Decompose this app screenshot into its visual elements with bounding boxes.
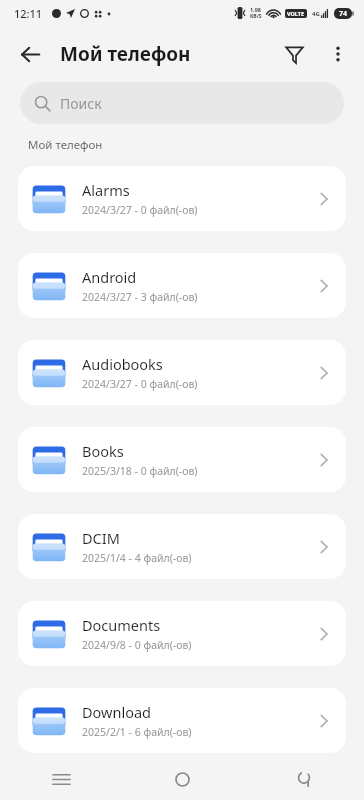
button[interactable]: Audiobooks [18,340,346,405]
staticText: Поиск [60,94,102,113]
staticText: 2024/3/27 - 3 файл(-ов) [82,290,198,304]
staticText: 2025/1/4 - 4 файл(-ов) [82,551,192,565]
staticText: 2024/9/8 - 0 файл(-ов) [82,638,192,652]
button[interactable]: Home [122,758,243,800]
staticText: Documents [82,615,161,635]
button[interactable]: Поиск [20,82,344,124]
staticText: 2025/3/18 - 0 файл(-ов) [82,464,198,478]
staticText: DCIM [82,528,120,548]
staticText: Audiobooks [82,354,163,374]
button[interactable]: Android [18,253,346,318]
staticText: 2024/3/27 - 0 файл(-ов) [82,203,198,217]
button[interactable]: Back [243,758,364,800]
staticText: Alarms [82,180,130,200]
button[interactable]: Back [8,32,52,76]
button[interactable]: Recents [0,758,122,800]
staticText: Мой телефон [28,137,103,153]
button[interactable]: Filter [272,32,316,76]
staticText: Download [82,702,151,722]
staticText: KB/S [250,13,262,20]
button[interactable]: Books [18,427,346,492]
button[interactable]: DCIM [18,514,346,579]
staticText: 74 [339,9,348,19]
staticText: Books [82,441,124,461]
staticText: Мой телефон [60,41,191,67]
button[interactable]: More options [316,32,360,76]
staticText: 4G [312,10,320,18]
button[interactable]: Documents [18,601,346,666]
staticText: 2025/2/1 - 6 файл(-ов) [82,725,192,739]
staticText: 1,98 [250,6,262,13]
staticText: 12:11 [14,6,43,21]
button[interactable]: Download [18,688,346,753]
staticText: VOLTE [287,10,305,17]
staticText: 2024/3/27 - 0 файл(-ов) [82,377,198,391]
button[interactable]: Alarms [18,166,346,231]
staticText: Android [82,267,137,287]
